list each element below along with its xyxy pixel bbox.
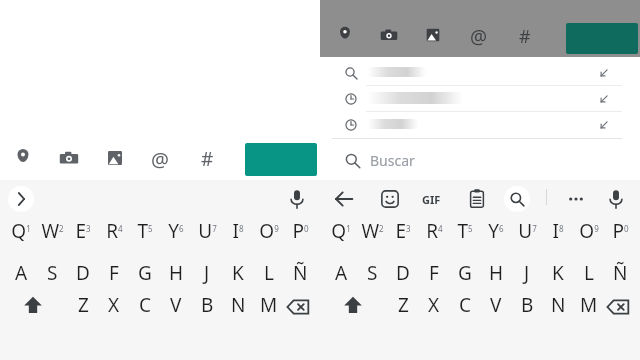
button[interactable]: T5 [449, 216, 481, 246]
button[interactable]: L [573, 258, 605, 288]
button[interactable]: Ñ [284, 258, 316, 288]
staticText: T5 [457, 218, 473, 244]
button[interactable]: B [191, 290, 223, 320]
staticText: D [76, 260, 90, 286]
button[interactable]: Backspace [606, 295, 630, 319]
button[interactable]: @ [148, 146, 172, 170]
staticText: M [260, 292, 278, 318]
button[interactable]: Buscar [332, 139, 622, 180]
button[interactable]: Z [67, 290, 99, 320]
button[interactable]: R4 [418, 216, 450, 246]
button[interactable]: X [98, 290, 130, 320]
button[interactable]: R4 [98, 216, 130, 246]
button[interactable]: U7 [191, 216, 223, 246]
button[interactable]: Ñ [604, 258, 636, 288]
button[interactable]: M [253, 290, 285, 320]
staticText: J [524, 260, 530, 286]
button[interactable]: Q1 [325, 216, 357, 246]
button[interactable]: F [418, 258, 450, 288]
button[interactable]: G [129, 258, 161, 288]
button[interactable]: # [514, 24, 536, 46]
button[interactable]: Back [333, 188, 355, 210]
button[interactable]: U7 [511, 216, 543, 246]
button[interactable]: F [98, 258, 130, 288]
button[interactable]: Location [336, 25, 354, 43]
button[interactable]: V [480, 290, 512, 320]
button[interactable]: D [387, 258, 419, 288]
button[interactable]: O9 [573, 216, 605, 246]
button[interactable]: # [195, 146, 219, 170]
staticText: Buscar [370, 151, 415, 170]
button[interactable] [332, 86, 622, 112]
button[interactable]: Location [13, 147, 33, 167]
button[interactable]: Expand toolbar [8, 186, 34, 212]
button[interactable]: J [191, 258, 223, 288]
button[interactable]: Gallery [105, 148, 125, 168]
button[interactable]: Stickers [379, 188, 401, 210]
button[interactable]: T5 [129, 216, 161, 246]
staticText: A [335, 260, 348, 286]
button[interactable]: S [36, 258, 68, 288]
button[interactable]: More options [565, 188, 587, 210]
button[interactable]: N [222, 290, 254, 320]
staticText: F [429, 260, 439, 286]
button[interactable]: L [253, 258, 285, 288]
button[interactable]: I8 [222, 216, 254, 246]
button[interactable]: J [511, 258, 543, 288]
button[interactable]: G [449, 258, 481, 288]
button[interactable]: Camera [380, 26, 398, 44]
staticText: E3 [395, 218, 411, 244]
staticText: A [15, 260, 28, 286]
staticText: R4 [106, 218, 123, 244]
staticText: B [201, 292, 214, 318]
button[interactable] [332, 60, 622, 86]
button[interactable]: Y6 [160, 216, 192, 246]
button[interactable]: P0 [604, 216, 636, 246]
button[interactable]: Q1 [5, 216, 37, 246]
staticText: M [580, 292, 598, 318]
staticText: V [170, 292, 182, 318]
button[interactable]: Shift [22, 294, 44, 316]
button[interactable]: W2 [36, 216, 68, 246]
button[interactable]: K [222, 258, 254, 288]
button[interactable]: C [449, 290, 481, 320]
button[interactable]: @ [468, 24, 490, 46]
button[interactable]: Camera [59, 148, 79, 168]
button[interactable]: N [542, 290, 574, 320]
button[interactable]: W2 [356, 216, 388, 246]
button[interactable]: O9 [253, 216, 285, 246]
button[interactable]: Gallery [424, 26, 442, 44]
button[interactable]: E3 [67, 216, 99, 246]
button[interactable] [332, 112, 622, 138]
button[interactable]: C [129, 290, 161, 320]
button[interactable]: Z [387, 290, 419, 320]
button[interactable]: Y6 [480, 216, 512, 246]
button[interactable]: E3 [387, 216, 419, 246]
button[interactable]: H [480, 258, 512, 288]
button[interactable]: GIF [418, 190, 444, 208]
button[interactable]: M [573, 290, 605, 320]
button[interactable]: S [356, 258, 388, 288]
staticText: GIF [422, 192, 441, 207]
button[interactable]: A [325, 258, 357, 288]
button[interactable]: Shift [342, 294, 364, 316]
button[interactable]: K [542, 258, 574, 288]
staticText: U7 [198, 218, 217, 244]
staticText: E3 [75, 218, 91, 244]
staticText: W2 [41, 218, 64, 244]
button[interactable]: P0 [284, 216, 316, 246]
button[interactable]: Voice input [605, 188, 627, 210]
button[interactable]: Send [245, 143, 317, 176]
button[interactable]: V [160, 290, 192, 320]
button[interactable]: A [5, 258, 37, 288]
button[interactable]: Search [504, 186, 530, 212]
button[interactable]: Voice input [286, 188, 308, 210]
button[interactable]: B [511, 290, 543, 320]
button[interactable]: I8 [542, 216, 574, 246]
button[interactable]: Clipboard [466, 188, 488, 210]
button[interactable]: Send [566, 23, 638, 54]
button[interactable]: D [67, 258, 99, 288]
button[interactable]: H [160, 258, 192, 288]
button[interactable]: Backspace [286, 295, 310, 319]
button[interactable]: X [418, 290, 450, 320]
